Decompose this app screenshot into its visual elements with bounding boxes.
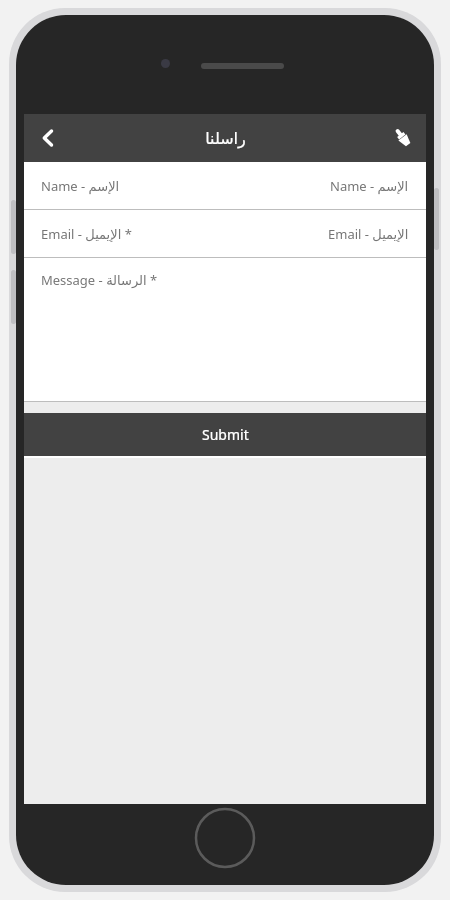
staticText: Name - الإسم [330,177,409,195]
staticText: Email - الإيميل [328,225,409,243]
button[interactable]: Submit [24,413,426,456]
staticText: Message - الرسالة * [41,271,158,289]
staticText: Email - الإيميل * [41,225,132,243]
button[interactable]: Message - الرسالة * [24,258,426,401]
staticText: راسلنا [205,129,246,148]
staticText: Submit [202,425,249,444]
button[interactable]: Email - الإيميل * [24,210,426,257]
staticText: Name - الإسم [41,177,120,195]
button[interactable]: Name - الإسم [24,162,426,209]
button[interactable]: Theme [380,114,426,162]
button[interactable]: Back [24,114,72,162]
